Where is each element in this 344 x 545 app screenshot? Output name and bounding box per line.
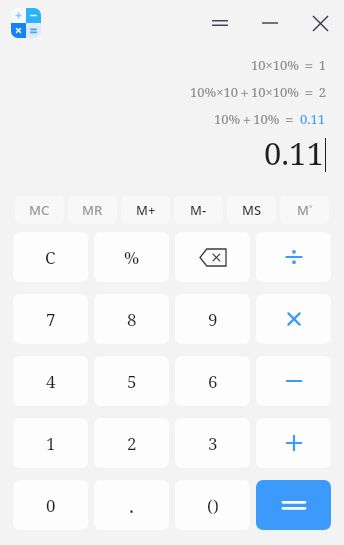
- button[interactable]: Equals: [256, 480, 331, 530]
- button[interactable]: Divide: [256, 232, 331, 282]
- staticText: MR: [82, 201, 103, 219]
- staticText: MS: [242, 201, 262, 219]
- button[interactable]: 3: [175, 418, 250, 468]
- staticText: 2: [127, 432, 137, 455]
- staticText: 0: [46, 494, 56, 517]
- button[interactable]: 0: [13, 480, 88, 530]
- staticText: 8: [127, 308, 137, 331]
- staticText: 0.11: [264, 132, 324, 174]
- button[interactable]: C: [13, 232, 88, 282]
- staticText: 7: [46, 308, 56, 331]
- button[interactable]: Calculator app icon: [11, 8, 41, 38]
- button[interactable]: Close: [300, 6, 340, 40]
- button[interactable]: MC: [15, 196, 64, 224]
- button[interactable]: (): [175, 480, 250, 530]
- staticText: 10×10% ＝ 1: [250, 56, 326, 74]
- staticText: %: [124, 246, 140, 269]
- button[interactable]: 2: [94, 418, 169, 468]
- button[interactable]: 5: [94, 356, 169, 406]
- staticText: 6: [208, 370, 218, 393]
- button[interactable]: 4: [13, 356, 88, 406]
- staticText: 10%×10＋10×10% ＝ 2: [190, 83, 326, 101]
- staticText: 10%＋10% ＝: [214, 110, 300, 128]
- staticText: M+: [136, 201, 156, 219]
- button[interactable]: M+: [121, 196, 170, 224]
- staticText: 1: [46, 432, 56, 455]
- button[interactable]: Minimize: [250, 6, 290, 40]
- button[interactable]: Multiply: [256, 294, 331, 344]
- button[interactable]: 1: [13, 418, 88, 468]
- button[interactable]: MS: [227, 196, 276, 224]
- staticText: 0.11: [300, 110, 326, 128]
- button[interactable]: 8: [94, 294, 169, 344]
- button[interactable]: 7: [13, 294, 88, 344]
- button[interactable]: M-: [174, 196, 223, 224]
- staticText: 5: [127, 370, 137, 393]
- button[interactable]: 6: [175, 356, 250, 406]
- staticText: C: [45, 246, 56, 269]
- staticText: 3: [208, 432, 218, 455]
- button[interactable]: MR: [68, 196, 117, 224]
- button[interactable]: %: [94, 232, 169, 282]
- staticText: (): [207, 494, 219, 517]
- staticText: M-: [190, 201, 207, 219]
- button[interactable]: .: [94, 480, 169, 530]
- staticText: M˅: [297, 201, 313, 219]
- button[interactable]: M˅: [280, 196, 329, 224]
- button[interactable]: 9: [175, 294, 250, 344]
- staticText: .: [129, 492, 134, 519]
- button[interactable]: Backspace: [175, 232, 250, 282]
- staticText: 9: [208, 308, 218, 331]
- staticText: 4: [46, 370, 56, 393]
- staticText: MC: [29, 201, 50, 219]
- button[interactable]: Subtract: [256, 356, 331, 406]
- button[interactable]: Menu: [200, 6, 240, 40]
- button[interactable]: Add: [256, 418, 331, 468]
